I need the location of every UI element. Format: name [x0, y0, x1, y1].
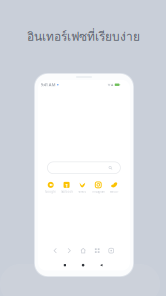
staticText: Google: [45, 190, 56, 193]
staticText: อินเทอร์เฟซที่เรียบง่าย: [27, 27, 140, 46]
staticText: instagram: [92, 190, 104, 193]
staticText: facebook: [60, 190, 72, 193]
staticText: vimeo: [78, 190, 86, 193]
button[interactable]: vimeo: [74, 180, 90, 194]
button[interactable]: facebook: [59, 180, 74, 194]
staticText: Twitter: [110, 190, 119, 193]
button[interactable]: Settings: [104, 245, 118, 256]
button[interactable]: Google: [43, 180, 59, 194]
button[interactable]: Tabs: [90, 245, 104, 256]
button[interactable]: Forward: [62, 245, 76, 256]
button[interactable]: Back: [48, 245, 62, 256]
button[interactable]: Home: [76, 245, 90, 256]
button[interactable]: instagram: [90, 180, 106, 194]
button[interactable]: Twitter: [106, 180, 122, 194]
staticText: 9:41 AM: [41, 82, 56, 87]
